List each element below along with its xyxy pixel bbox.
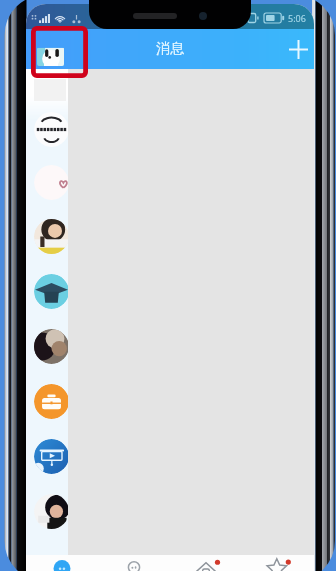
button[interactable]: Messages: [26, 555, 98, 571]
button[interactable]: Contact: [26, 430, 68, 484]
button[interactable]: Moments: [98, 555, 170, 571]
staticText: 5:06: [288, 12, 306, 24]
button[interactable]: Add: [285, 36, 311, 62]
button[interactable]: Me: [242, 555, 314, 571]
button[interactable]: Discover: [170, 555, 242, 571]
button[interactable]: Contact: [26, 103, 68, 157]
button[interactable]: Profile: [37, 47, 64, 66]
button[interactable]: Contact: [26, 210, 68, 264]
button[interactable]: Contact: [26, 485, 68, 539]
button[interactable]: Contact: [26, 156, 68, 210]
button[interactable]: Contact: [26, 375, 68, 429]
staticText: 消息: [156, 40, 184, 58]
button[interactable]: Contact: [26, 265, 68, 319]
button[interactable]: Contact: [26, 320, 68, 374]
